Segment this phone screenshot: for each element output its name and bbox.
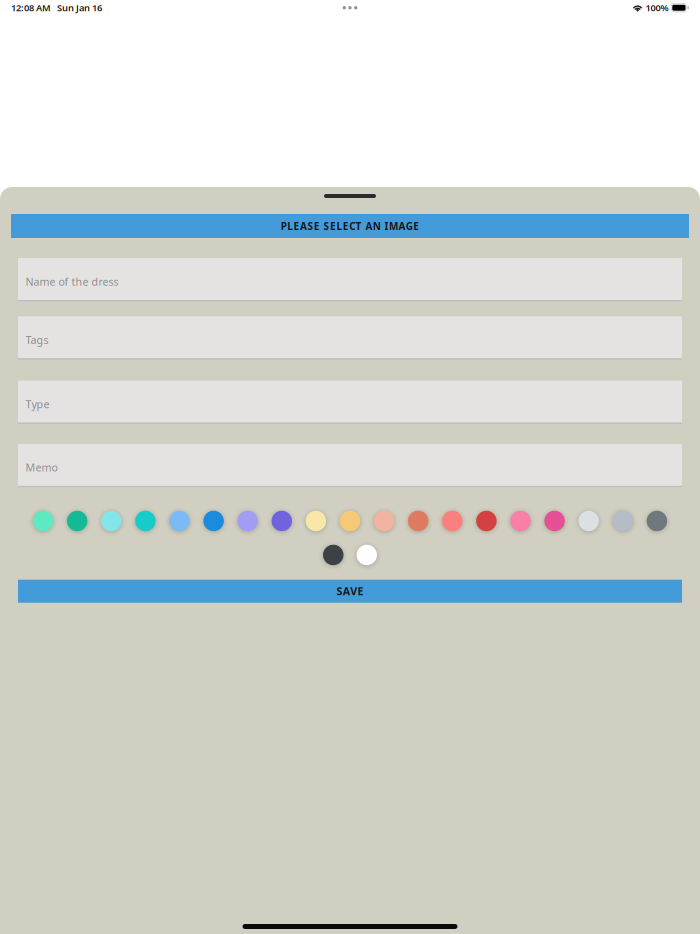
staticText: Name of the dress xyxy=(25,274,118,289)
button[interactable]: Select colour xyxy=(340,511,360,531)
button[interactable]: Select colour xyxy=(135,511,156,531)
button[interactable]: PLEASE SELECT AN IMAGE xyxy=(11,214,689,238)
staticText: PLEASE SELECT AN IMAGE xyxy=(281,219,419,233)
button[interactable]: Select colour xyxy=(272,511,292,531)
button[interactable]: Name of the dress xyxy=(18,258,682,301)
button[interactable]: Select colour xyxy=(510,511,531,531)
button[interactable]: Select colour xyxy=(323,545,343,565)
staticText: Memo xyxy=(25,460,57,475)
button[interactable]: Select colour xyxy=(442,511,463,531)
button[interactable]: Select colour xyxy=(306,511,326,531)
button[interactable]: Select colour xyxy=(237,511,258,531)
button[interactable]: Select colour xyxy=(203,511,224,531)
button[interactable]: Select colour xyxy=(647,511,667,531)
staticText: 100% xyxy=(645,1,668,14)
button[interactable]: Select colour xyxy=(578,511,599,531)
button[interactable]: Select colour xyxy=(101,511,122,531)
button[interactable]: Tags xyxy=(18,316,682,360)
button[interactable]: Select colour xyxy=(374,511,394,531)
button[interactable]: Type xyxy=(18,381,682,424)
button[interactable]: Select colour xyxy=(408,511,428,531)
staticText: Type xyxy=(25,397,49,411)
button[interactable]: Memo xyxy=(18,444,682,487)
button[interactable]: Select colour xyxy=(544,511,565,531)
button[interactable]: SAVE xyxy=(18,580,682,603)
staticText: Tags xyxy=(25,332,48,347)
staticText: 12:08 AM Sun Jan 16 xyxy=(11,1,102,14)
button[interactable]: Select colour xyxy=(613,511,633,531)
staticText: SAVE xyxy=(336,584,363,598)
button[interactable]: Select colour xyxy=(356,545,377,565)
button[interactable]: Select colour xyxy=(33,511,53,531)
button[interactable]: Select colour xyxy=(169,511,190,531)
button[interactable]: Select colour xyxy=(67,511,87,531)
button[interactable]: Select colour xyxy=(476,511,497,531)
